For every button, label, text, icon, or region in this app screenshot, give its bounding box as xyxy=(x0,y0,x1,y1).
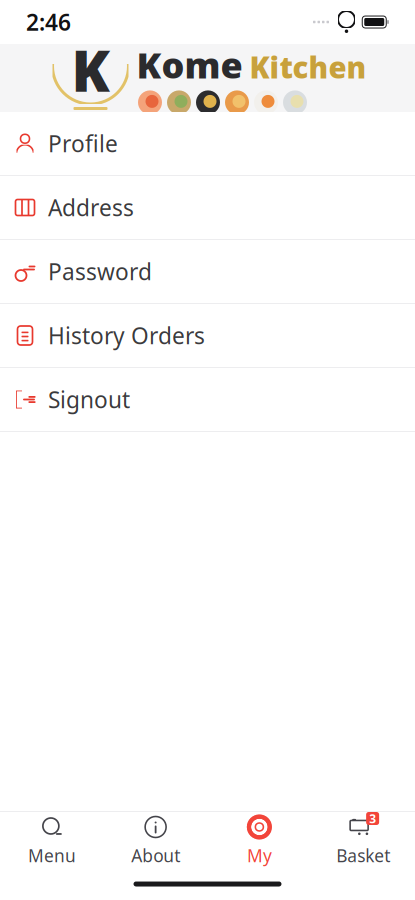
button[interactable]: Password xyxy=(0,240,415,304)
button[interactable]: Profile xyxy=(0,112,415,176)
staticText: Signout xyxy=(48,384,130,414)
staticText: Password xyxy=(48,256,152,286)
button[interactable]: Menu xyxy=(0,807,104,873)
staticText: Profile xyxy=(48,128,118,158)
button[interactable]: Address xyxy=(0,176,415,240)
button[interactable]: 3 xyxy=(311,807,415,873)
button[interactable]: Signout xyxy=(0,368,415,432)
button[interactable]: History Orders xyxy=(0,304,415,368)
staticText: History Orders xyxy=(48,320,205,350)
staticText: My xyxy=(247,844,272,867)
staticText: 3 xyxy=(369,810,376,826)
button[interactable]: My xyxy=(207,807,311,873)
staticText: Kome xyxy=(136,41,242,88)
staticText: Menu xyxy=(28,844,76,867)
staticText: About xyxy=(131,844,180,867)
button[interactable]: About xyxy=(104,807,208,873)
staticText: K xyxy=(71,33,109,107)
staticText: 2:46 xyxy=(26,7,71,37)
staticText: Kitchen xyxy=(249,48,366,87)
staticText: Address xyxy=(48,192,134,222)
staticText: Basket xyxy=(336,844,390,867)
